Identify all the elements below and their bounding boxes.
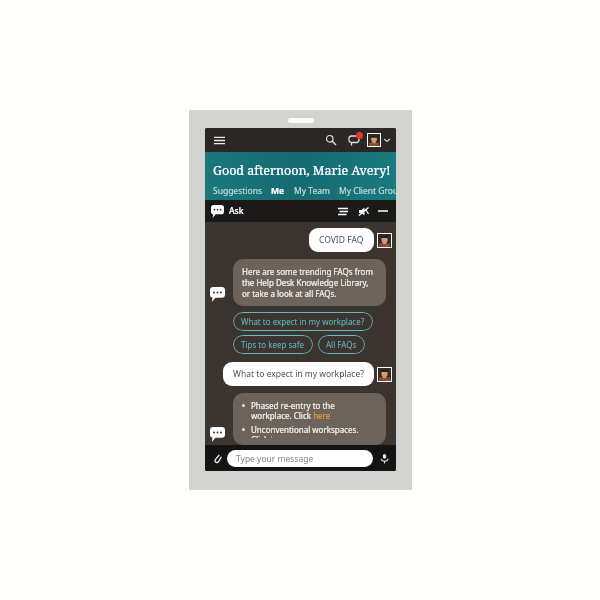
staticText: All FAQs [326,339,357,350]
button[interactable]: Mute [355,203,371,219]
button[interactable]: Menu [211,132,227,148]
button[interactable]: Type your message [227,450,373,467]
staticText: Me [271,185,285,197]
button[interactable]: My Client Group [339,184,396,198]
staticText: Tips to keep safe [241,339,305,350]
button[interactable]: My Team [294,184,330,198]
button[interactable]: Here are some trending FAQs from the Hel… [233,259,386,306]
staticText: Here are some trending FAQs from the Hel… [242,266,377,299]
button[interactable]: Suggestions [213,184,262,198]
button[interactable]: Phased re-entry to the workplace. Click … [233,393,386,445]
button[interactable]: Minimize [375,203,391,219]
button[interactable]: Me [271,184,285,198]
staticText: My Client Group [339,185,396,197]
button[interactable]: COVID FAQ [309,228,374,252]
staticText: Good afternoon, Marie Avery! [213,162,391,179]
staticText: COVID FAQ [319,234,364,246]
button[interactable]: All FAQs [318,335,365,354]
staticText: Ask [229,205,244,217]
button[interactable]: What to expect in my workplace? [223,362,374,386]
button[interactable]: What to expect in my workplace? [233,312,373,331]
button[interactable]: Search [322,131,340,149]
staticText: Phased re-entry to the workplace. Click … [251,400,377,422]
button[interactable]: Attach file [209,450,225,466]
button[interactable]: Notifications [344,130,364,150]
staticText: Suggestions [213,185,262,197]
button[interactable]: Voice input [376,450,392,466]
staticText: Type your message [236,453,314,465]
staticText: My Team [294,185,330,197]
staticText: Unconventional workspaces. Click here [251,424,377,438]
staticText: What to expect in my workplace? [233,368,364,380]
button[interactable]: Tips to keep safe [233,335,313,354]
button[interactable]: Options [335,203,351,219]
staticText: What to expect in my workplace? [241,316,365,327]
